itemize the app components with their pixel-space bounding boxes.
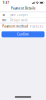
staticText: Design work <box>10 18 27 22</box>
staticText: Visa 4242 <box>30 25 44 28</box>
button[interactable]: Payment method <box>0 24 46 29</box>
staticText: Jane Cooper <box>10 13 28 17</box>
staticText: Payment Details <box>11 7 35 10</box>
staticText: For <box>2 18 6 22</box>
button[interactable]: For <box>0 18 46 22</box>
staticText: To <box>2 13 5 17</box>
staticText: 9:41 <box>3 1 10 4</box>
staticText: Confirm <box>17 33 29 36</box>
staticText: Payment method <box>2 25 28 28</box>
button[interactable]: Confirm <box>1 31 44 37</box>
button[interactable]: To <box>0 13 46 17</box>
